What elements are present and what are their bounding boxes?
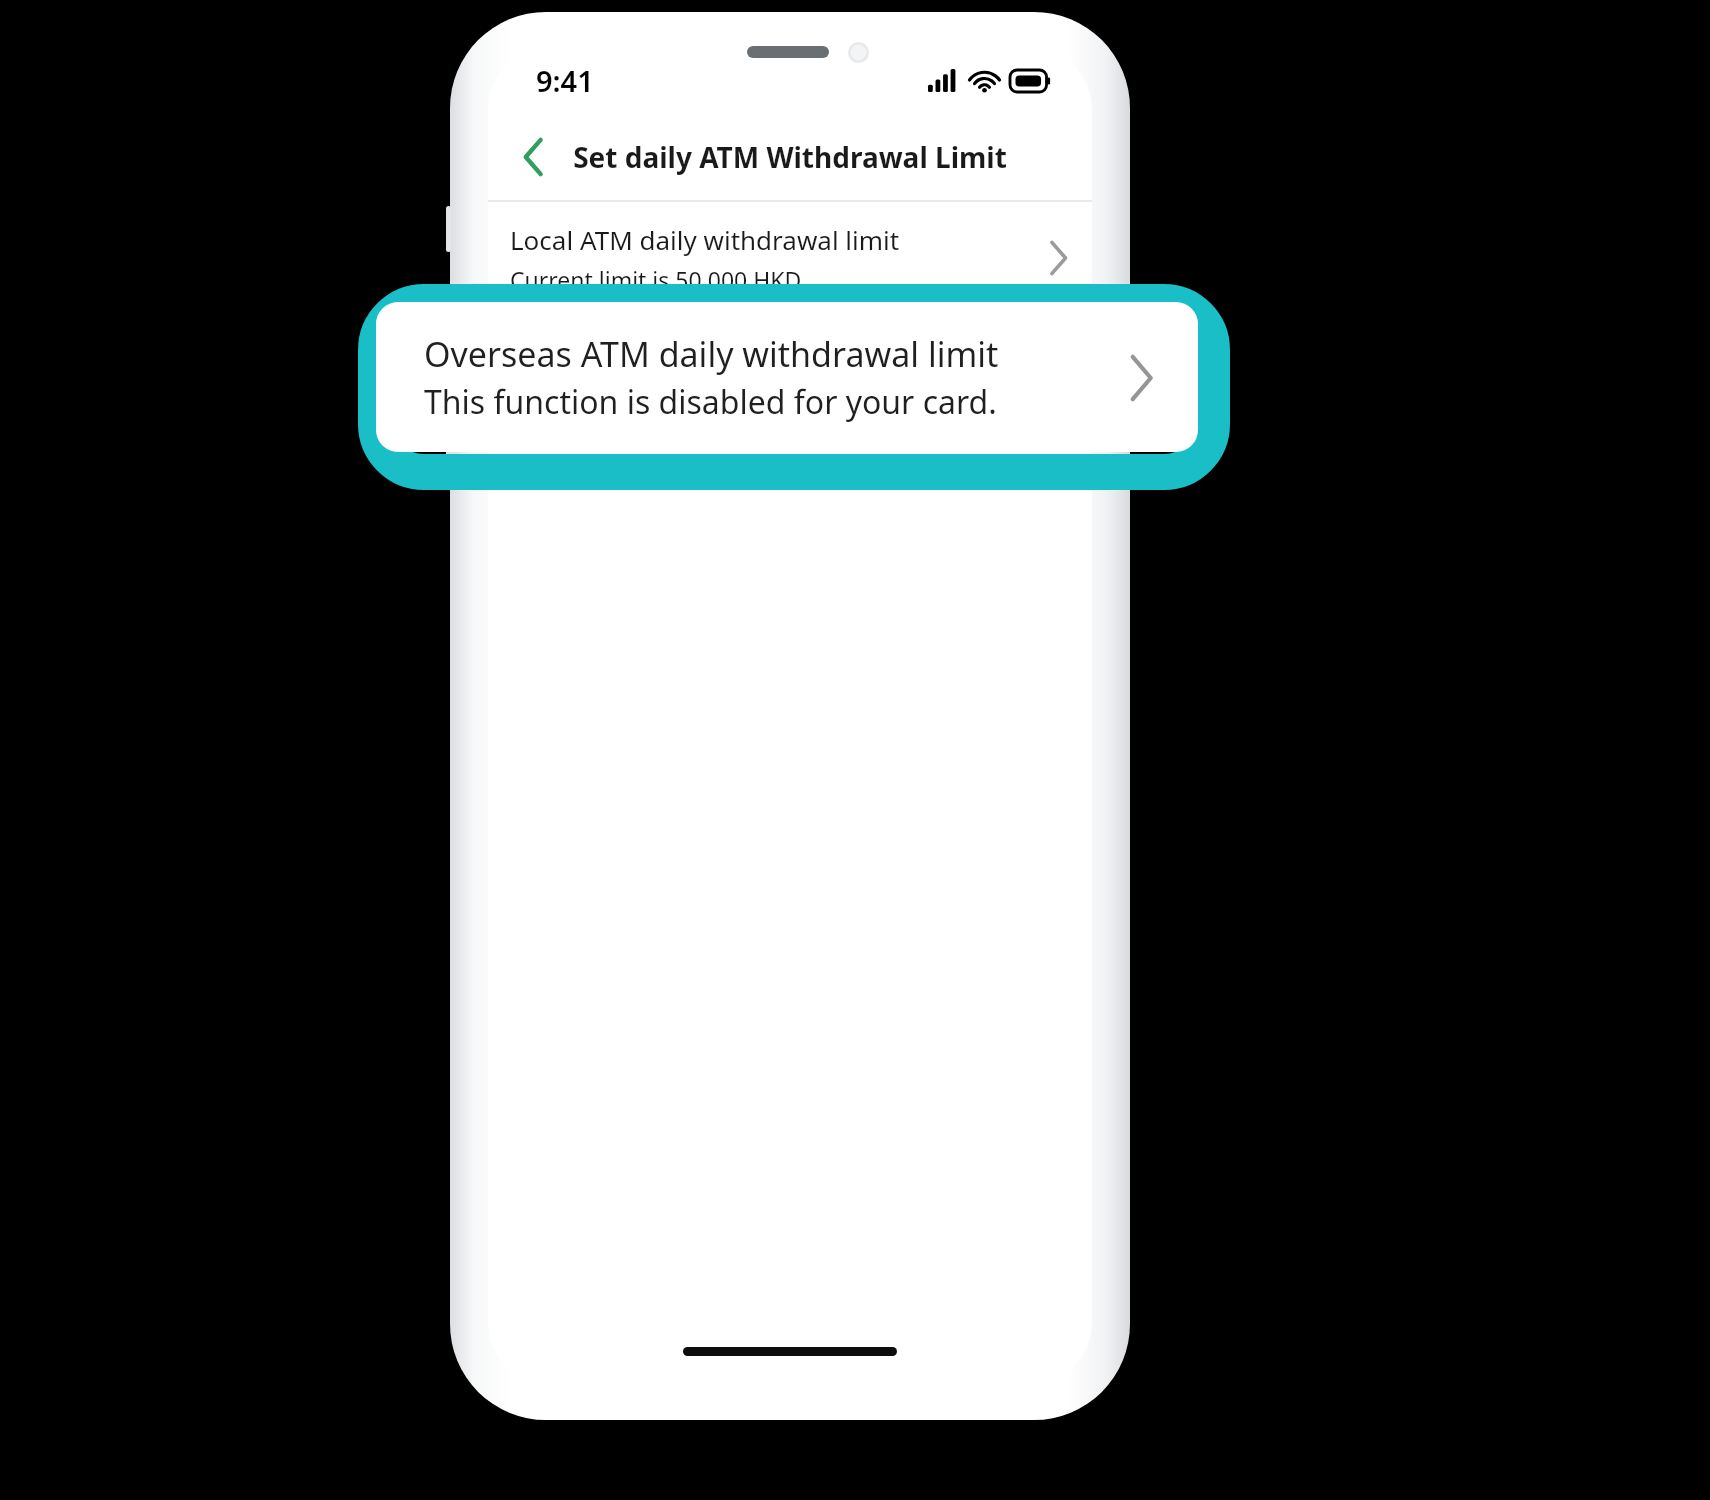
staticText: Overseas ATM daily withdrawal limit <box>424 331 999 377</box>
staticText: Set daily ATM Withdrawal Limit <box>573 138 1007 176</box>
button[interactable]: Overseas ATM daily withdrawal limit <box>376 302 1198 452</box>
staticText: This function is disabled for your card. <box>424 380 997 424</box>
staticText: Current limit is 50,000 HKD <box>510 264 802 295</box>
button[interactable]: Back <box>500 124 566 190</box>
staticText: Local ATM daily withdrawal limit <box>510 222 900 257</box>
staticText: 9:41 <box>536 61 594 100</box>
button[interactable]: Local ATM daily withdrawal limit <box>488 202 1092 314</box>
